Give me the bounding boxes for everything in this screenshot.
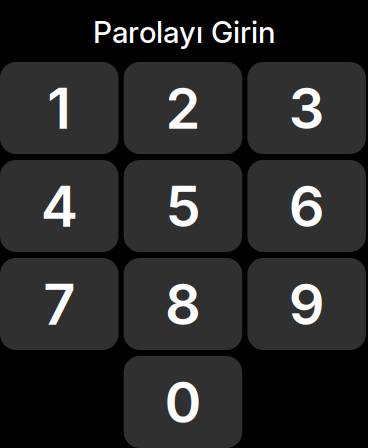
staticText: 8 bbox=[165, 271, 201, 338]
staticText: 7 bbox=[43, 271, 75, 338]
button[interactable]: 6 bbox=[247, 160, 366, 252]
staticText: 6 bbox=[289, 173, 325, 240]
staticText: 0 bbox=[164, 369, 201, 436]
button[interactable]: 2 bbox=[124, 62, 242, 154]
staticText: 2 bbox=[165, 75, 200, 142]
staticText: 5 bbox=[165, 173, 200, 240]
button[interactable]: 4 bbox=[0, 160, 118, 252]
button[interactable]: 7 bbox=[0, 258, 118, 350]
staticText: 3 bbox=[289, 75, 325, 142]
button[interactable]: 0 bbox=[124, 356, 242, 448]
button[interactable]: 9 bbox=[247, 258, 366, 350]
button[interactable]: 1 bbox=[0, 62, 118, 154]
button[interactable]: 5 bbox=[124, 160, 242, 252]
staticText: Parolayı Girin bbox=[93, 14, 275, 50]
staticText: 4 bbox=[41, 173, 78, 240]
staticText: 9 bbox=[289, 271, 325, 338]
staticText: 1 bbox=[47, 75, 71, 142]
button[interactable]: 3 bbox=[247, 62, 366, 154]
button[interactable]: 8 bbox=[124, 258, 242, 350]
